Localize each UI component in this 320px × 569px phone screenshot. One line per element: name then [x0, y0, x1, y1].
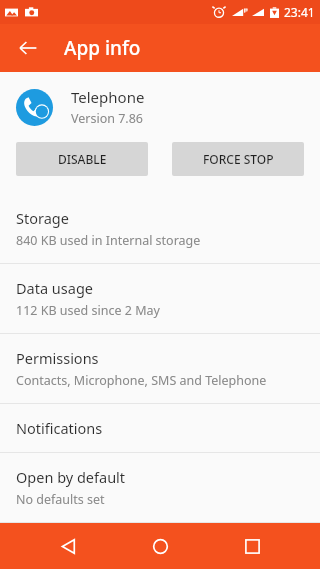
- staticText: Contacts, Microphone, SMS and Telephone: [16, 372, 267, 389]
- staticText: No defaults set: [16, 491, 105, 508]
- staticText: DISABLE: [58, 151, 107, 167]
- button[interactable]: Back: [44, 523, 92, 569]
- staticText: 112 KB used since 2 May: [16, 302, 160, 319]
- button[interactable]: Storage: [0, 194, 320, 263]
- staticText: Version 7.86: [71, 110, 144, 127]
- staticText: Storage: [16, 208, 69, 228]
- button[interactable]: Open by default: [0, 453, 320, 522]
- button[interactable]: Data usage: [0, 264, 320, 333]
- button[interactable]: DISABLE: [16, 142, 148, 176]
- button[interactable]: Back: [8, 28, 48, 68]
- button[interactable]: Telephone: [0, 72, 320, 142]
- staticText: Permissions: [16, 348, 99, 368]
- staticText: Telephone: [71, 87, 145, 107]
- button[interactable]: Home: [136, 523, 184, 569]
- button[interactable]: Permissions: [0, 334, 320, 403]
- button[interactable]: FORCE STOP: [172, 142, 304, 176]
- staticText: App info: [64, 35, 141, 61]
- staticText: Data usage: [16, 278, 93, 298]
- staticText: 840 KB used in Internal storage: [16, 232, 201, 249]
- button[interactable]: Notifications: [0, 404, 320, 452]
- staticText: Open by default: [16, 467, 126, 487]
- staticText: FORCE STOP: [203, 151, 274, 167]
- staticText: Notifications: [16, 418, 103, 438]
- staticText: 23:41: [284, 4, 315, 20]
- button[interactable]: Recents: [228, 523, 276, 569]
